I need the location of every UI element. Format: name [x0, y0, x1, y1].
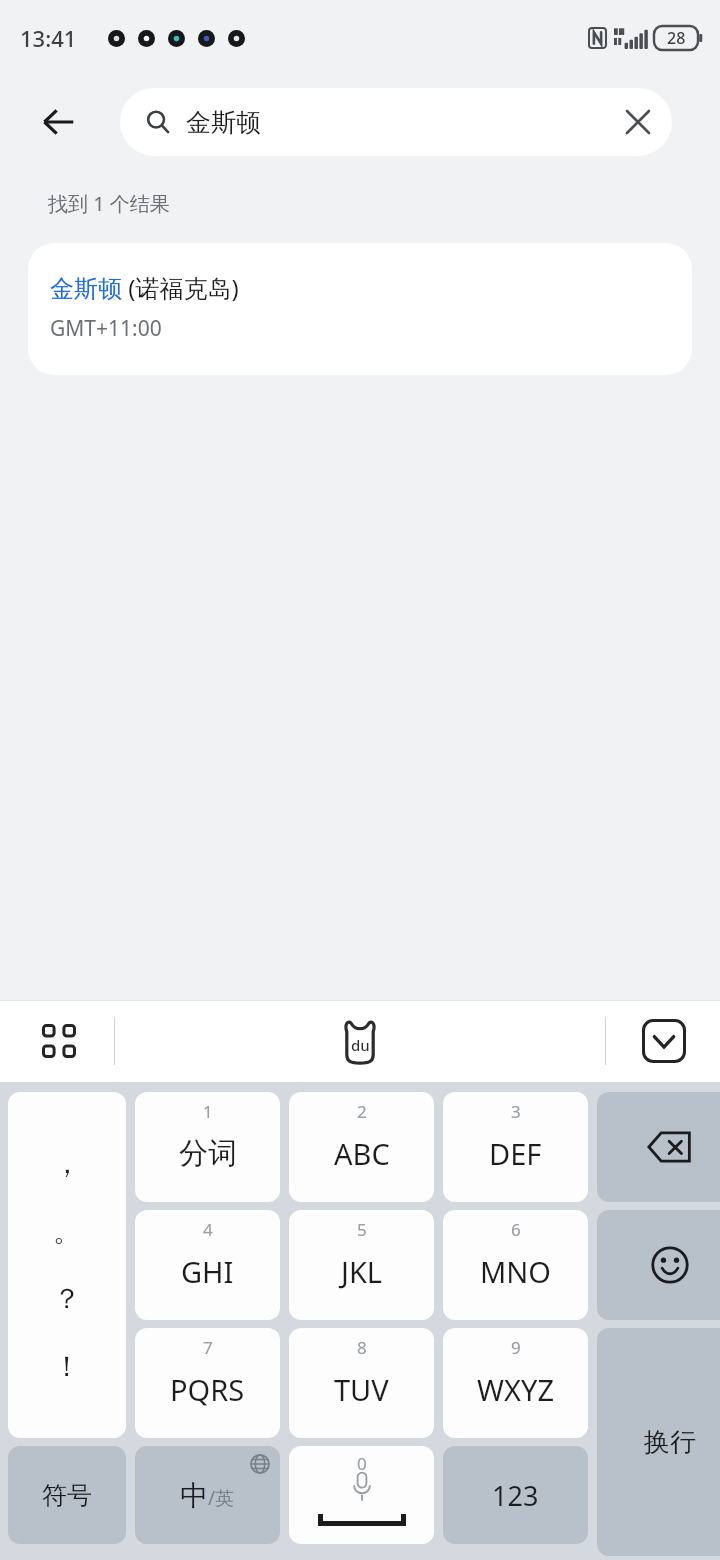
staticText: 中	[180, 1478, 208, 1513]
staticText: 分词	[179, 1135, 237, 1172]
staticText: 5	[357, 1218, 367, 1241]
staticText: ，	[53, 1146, 81, 1181]
staticText: DEF	[489, 1134, 542, 1173]
button[interactable]: 7	[135, 1328, 280, 1438]
button[interactable]: 金斯顿	[120, 88, 672, 156]
button[interactable]: 6	[443, 1210, 588, 1320]
staticText: 7	[203, 1336, 213, 1359]
staticText: 8	[357, 1336, 367, 1359]
button[interactable]: 8	[289, 1328, 434, 1438]
staticText: GMT+11:00	[50, 314, 162, 343]
button[interactable]: 金斯顿 (诺福克岛)	[28, 243, 692, 375]
staticText: GHI	[181, 1252, 234, 1291]
button[interactable]: 5	[289, 1210, 434, 1320]
staticText: ！	[53, 1349, 81, 1384]
button[interactable]: 9	[443, 1328, 588, 1438]
button[interactable]: Input method logo	[323, 1004, 397, 1078]
staticText: 金斯顿 (诺福克岛)	[50, 271, 239, 304]
staticText: 符号	[42, 1480, 92, 1511]
staticText: 123	[492, 1477, 539, 1514]
staticText: PQRS	[170, 1370, 245, 1409]
button[interactable]: ，	[8, 1092, 126, 1438]
staticText: 2	[357, 1100, 367, 1123]
staticText: /英	[208, 1485, 235, 1511]
button[interactable]: 1	[135, 1092, 280, 1202]
staticText: 13:41	[20, 23, 77, 53]
staticText: 金斯顿	[186, 107, 261, 138]
button[interactable]: 中	[135, 1446, 280, 1544]
button[interactable]: Clear	[612, 96, 664, 148]
staticText: 9	[511, 1336, 521, 1359]
staticText: 1	[203, 1100, 213, 1123]
staticText: 3	[511, 1100, 521, 1123]
staticText: JKL	[341, 1252, 383, 1291]
staticText: 找到 1 个结果	[48, 190, 170, 217]
staticText: 6	[511, 1218, 521, 1241]
staticText: TUV	[334, 1370, 389, 1409]
button[interactable]: 符号	[8, 1446, 126, 1544]
button[interactable]: 2	[289, 1092, 434, 1202]
button[interactable]: Backspace	[597, 1092, 720, 1202]
staticText: 。	[53, 1214, 81, 1249]
staticText: 28	[667, 27, 686, 49]
staticText: MNO	[480, 1252, 551, 1291]
button[interactable]: Hide keyboard	[632, 1009, 696, 1073]
staticText: 4	[203, 1218, 213, 1241]
button[interactable]: 3	[443, 1092, 588, 1202]
staticText: ABC	[334, 1134, 390, 1173]
button[interactable]: Keyboard menu	[28, 1010, 90, 1072]
button[interactable]: Space	[289, 1446, 434, 1544]
button[interactable]: Emoji	[597, 1210, 720, 1320]
button[interactable]: Back	[28, 92, 88, 152]
button[interactable]: 4	[135, 1210, 280, 1320]
staticText: 换行	[644, 1426, 696, 1459]
staticText: WXYZ	[477, 1370, 554, 1409]
button[interactable]: 123	[443, 1446, 588, 1544]
staticText: 0	[357, 1452, 367, 1475]
staticText: du	[351, 1035, 370, 1055]
button[interactable]: 换行	[597, 1328, 720, 1556]
staticText: ？	[53, 1281, 81, 1316]
